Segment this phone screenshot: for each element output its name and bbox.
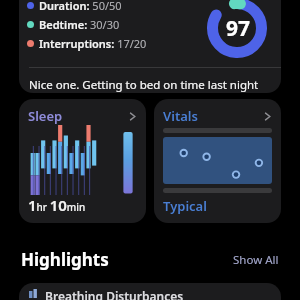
staticText: Typical <box>163 197 207 215</box>
staticText: 97 <box>226 14 251 43</box>
staticText: Interruptions: 17/20 <box>39 36 147 51</box>
other: Open Vitals <box>263 112 272 121</box>
staticText: Nice one. Getting to bed on time last ni… <box>29 77 271 93</box>
staticText: Show All <box>233 252 279 268</box>
staticText: 1hr 10min <box>28 195 86 215</box>
button[interactable]: Show All <box>233 252 279 268</box>
button[interactable]: Vitals <box>154 99 281 223</box>
button[interactable]: Sleep <box>19 99 146 223</box>
staticText: Highlights <box>21 248 109 271</box>
staticText: Bedtime: 30/30 <box>39 17 120 32</box>
staticText: Breathing Disturbances <box>45 288 184 300</box>
staticText: Sleep <box>28 107 63 125</box>
staticText: Vitals <box>163 107 198 125</box>
staticText: Duration: 50/50 <box>39 0 122 13</box>
button[interactable]: Breathing Disturbances <box>19 283 281 300</box>
button[interactable]: Duration: 50/50 <box>19 0 281 93</box>
other: Open Sleep <box>128 112 137 121</box>
